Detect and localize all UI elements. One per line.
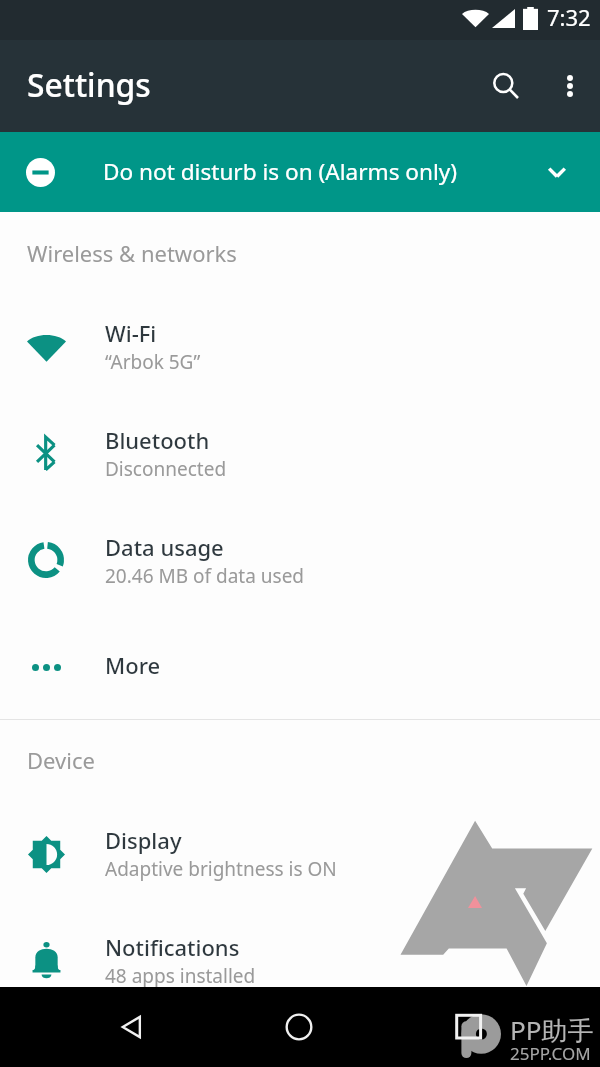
button[interactable]: Wi-Fi — [0, 295, 600, 401]
staticText: 25PP.COM — [510, 1042, 591, 1065]
staticText: Disconnected — [105, 456, 227, 482]
button[interactable]: Home — [267, 995, 331, 1059]
staticText: Wireless & networks — [27, 238, 237, 268]
button[interactable]: Do not disturb is on (Alarms only) — [0, 132, 600, 212]
staticText: 7:32 — [547, 2, 591, 32]
button[interactable]: More — [0, 625, 600, 705]
button[interactable]: Back — [100, 995, 164, 1059]
staticText: Wi-Fi — [105, 318, 157, 348]
button[interactable]: Notifications — [0, 908, 600, 987]
button[interactable]: Recents — [434, 995, 498, 1059]
button[interactable]: Search — [474, 54, 538, 118]
staticText: Settings — [27, 63, 151, 106]
staticText: “Arbok 5G” — [105, 349, 201, 375]
staticText: Display — [105, 825, 182, 855]
button[interactable]: More options — [538, 54, 600, 118]
staticText: Device — [27, 745, 95, 775]
button[interactable]: Expand — [533, 148, 581, 196]
staticText: More — [105, 650, 161, 680]
button[interactable]: Data usage — [0, 508, 600, 614]
staticText: Adaptive brightness is ON — [105, 856, 337, 882]
staticText: Do not disturb is on (Alarms only) — [103, 156, 458, 187]
staticText: PP助手 — [510, 1012, 594, 1048]
staticText: 48 apps installed — [105, 963, 256, 989]
staticText: Bluetooth — [105, 425, 210, 455]
staticText: Notifications — [105, 932, 240, 962]
button[interactable]: Display — [0, 802, 600, 908]
staticText: 20.46 MB of data used — [105, 563, 305, 589]
staticText: Data usage — [105, 532, 224, 562]
button[interactable]: Bluetooth — [0, 401, 600, 507]
